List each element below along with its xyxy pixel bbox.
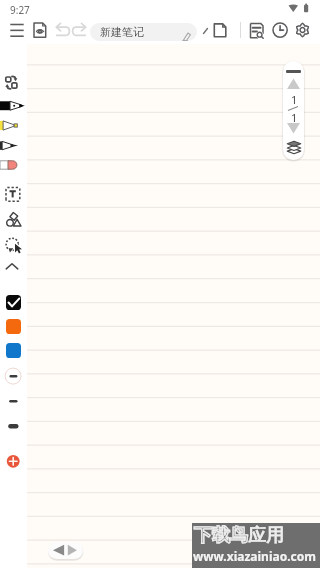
button[interactable]: Eraser — [0, 155, 27, 174]
button[interactable]: Redo — [68, 18, 92, 42]
button[interactable]: Transform — [0, 72, 22, 90]
button[interactable]: Highlighter — [0, 118, 27, 137]
button[interactable]: Pen — [0, 99, 27, 118]
button[interactable]: Add colour — [5, 453, 22, 470]
button[interactable]: Text — [5, 186, 21, 202]
button[interactable]: Settings — [291, 18, 315, 42]
staticText: 新建笔记 — [100, 25, 144, 39]
button[interactable]: Stroke medium — [5, 368, 22, 385]
button[interactable]: Previous page — [287, 78, 300, 89]
button[interactable]: Undo — [50, 18, 74, 42]
button[interactable]: Preview page — [28, 18, 52, 42]
button[interactable]: Layers — [286, 139, 302, 155]
button[interactable]: Search notes — [245, 18, 269, 42]
staticText: 9:27 — [10, 3, 30, 17]
staticText: 1 — [291, 92, 298, 107]
staticText: 1 — [291, 110, 298, 125]
button[interactable]: Pan — [48, 542, 83, 559]
staticText: www.xiazainiao.com — [193, 548, 316, 564]
button[interactable]: Collapse tools — [3, 258, 21, 276]
button[interactable]: Shapes — [2, 210, 22, 228]
button[interactable]: Lasso select — [2, 234, 22, 254]
button[interactable]: Blue colour — [6, 343, 21, 358]
button[interactable]: Next page — [287, 123, 300, 134]
staticText: 应用 — [248, 524, 284, 547]
button[interactable]: Menu — [5, 18, 29, 42]
button[interactable]: Stroke thick — [5, 417, 22, 431]
button[interactable]: Stroke thin — [5, 394, 22, 408]
button[interactable]: Black colour — [6, 295, 21, 310]
button[interactable]: History — [269, 18, 293, 42]
button[interactable]: Orange colour — [6, 319, 21, 334]
button[interactable]: Pencil — [0, 137, 27, 156]
button[interactable]: New document — [208, 18, 232, 42]
button[interactable]: 新建笔记 — [90, 23, 197, 41]
staticText: 下载鸟 — [194, 524, 248, 547]
